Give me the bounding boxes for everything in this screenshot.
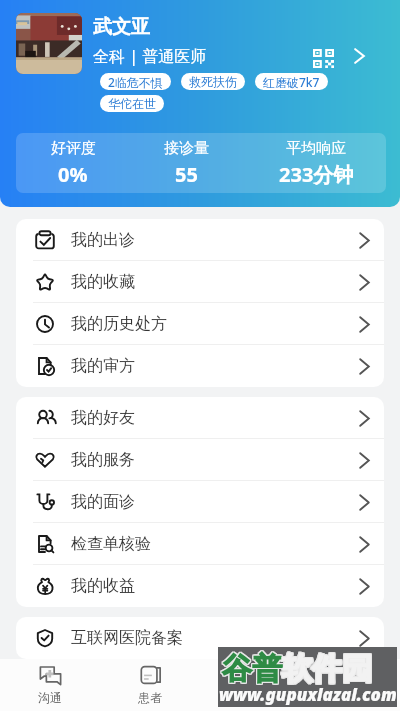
button[interactable]: 沟通 xyxy=(0,659,100,711)
button[interactable]: 我的历史处方 xyxy=(16,303,384,345)
button[interactable]: 我的面诊 xyxy=(16,481,384,523)
button[interactable]: 我的好友 xyxy=(16,397,384,439)
button[interactable]: 患者 xyxy=(100,659,200,711)
staticText: 互联网医院备案 xyxy=(71,628,359,648)
staticText: 工作台 xyxy=(232,690,268,705)
button[interactable]: 我的收益 xyxy=(16,565,384,607)
staticText: 平均响应 xyxy=(286,139,346,158)
staticText: 我的出诊 xyxy=(71,230,359,250)
button[interactable]: 我的服务 xyxy=(16,439,384,481)
staticText: 我的服务 xyxy=(71,450,359,470)
staticText: 谷普软件园 xyxy=(221,651,371,689)
button[interactable]: 工作台 xyxy=(200,659,300,711)
staticText: 谷普软件园 xyxy=(223,651,373,689)
staticText: 谷普软件园 xyxy=(221,649,371,687)
staticText: 红磨破7k7 xyxy=(263,74,320,90)
staticText: 谷普 xyxy=(222,650,282,688)
button[interactable]: 我的出诊 xyxy=(16,219,384,261)
staticText: 我的审方 xyxy=(71,356,359,376)
button[interactable]: 检查单核验 xyxy=(16,523,384,565)
staticText: 谷普软件园 xyxy=(223,650,373,688)
staticText: 0% xyxy=(58,161,88,188)
staticText: 我的好友 xyxy=(71,408,359,428)
staticText: 救死扶伤 xyxy=(189,74,237,89)
staticText: 谷普软件园 xyxy=(222,651,372,689)
staticText: 233分钟 xyxy=(279,161,354,188)
staticText: www.gupuxlazal.com xyxy=(219,683,397,706)
staticText: 软件园 xyxy=(282,650,372,688)
button[interactable]: 互联网医院备案 xyxy=(16,617,384,659)
staticText: 2临危不惧 xyxy=(108,74,163,90)
staticText: 华佗在世 xyxy=(108,96,156,111)
button[interactable]: 我的 xyxy=(300,659,400,711)
staticText: 我的收藏 xyxy=(71,272,359,292)
staticText: 我的 xyxy=(338,690,362,705)
staticText: 我的收益 xyxy=(71,576,359,596)
staticText: 好评度 xyxy=(51,139,96,158)
staticText: 全科 | 普通医师 xyxy=(93,45,207,67)
staticText: 我的历史处方 xyxy=(71,314,359,334)
staticText: 谷普软件园 xyxy=(223,649,373,687)
staticText: 沟通 xyxy=(38,690,62,705)
staticText: 我的面诊 xyxy=(71,492,359,512)
staticText: 接诊量 xyxy=(164,139,209,158)
staticText: 患者 xyxy=(138,690,162,705)
button[interactable]: 我的收藏 xyxy=(16,261,384,303)
staticText: 检查单核验 xyxy=(71,534,359,554)
staticText: 55 xyxy=(175,161,198,188)
button[interactable]: More xyxy=(345,42,373,70)
staticText: 武文亚 xyxy=(93,15,150,39)
button[interactable]: 我的审方 xyxy=(16,345,384,387)
staticText: 谷普软件园 xyxy=(221,650,371,688)
staticText: 谷普软件园 xyxy=(222,649,372,687)
button[interactable]: QR code xyxy=(306,41,340,75)
